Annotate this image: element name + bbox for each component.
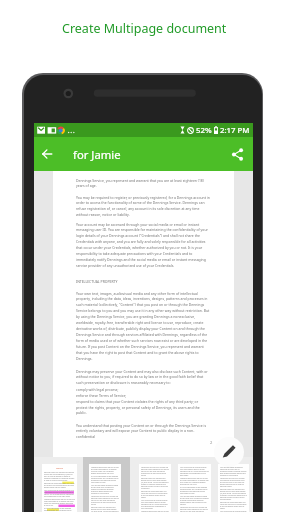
button[interactable]: Edit (214, 437, 244, 467)
staticText: Content that you post on or through the … (220, 477, 247, 487)
staticText: Dennings Service you represent and warra… (220, 488, 247, 500)
button[interactable]: Page 3 (139, 464, 171, 512)
staticText: Dennings can refuse registration of or c… (220, 501, 247, 509)
staticText: Dennings Service you represent and warra… (44, 471, 75, 481)
button[interactable]: Page 4 (178, 464, 211, 512)
button[interactable]: Share (224, 137, 250, 171)
staticText: Dennings Service you represent and warra… (141, 477, 169, 489)
staticText: Your account may be accessed through you… (180, 466, 209, 476)
button[interactable]: Page 2 (89, 464, 121, 512)
staticText: Terms (44, 466, 75, 469)
staticText: Credentials with anyone and you are full… (141, 510, 169, 512)
staticText: Dennings can refuse registration of or c… (141, 490, 169, 498)
staticText: It is your responsibility to take adequa… (91, 475, 119, 483)
staticText: Dennings Service, you represent and warr… (76, 178, 211, 188)
staticText: Your account may be accessed through you… (141, 499, 169, 509)
staticText: 2:17 PM (220, 125, 250, 136)
button[interactable]: Page 5 (218, 464, 249, 512)
staticText: Content that you post on or through the … (141, 466, 169, 476)
staticText: for Jamie (73, 147, 121, 162)
staticText: Credentials with anyone and you are full… (44, 498, 75, 506)
staticText: 2 (210, 440, 213, 445)
staticText: Your account may be accessed through you… (44, 489, 75, 497)
staticText: Your own text images audiovisual media a… (91, 484, 119, 494)
staticText: respond to claims that your Content viol… (76, 399, 199, 404)
staticText: INTELLECTUAL PROPERTY (76, 279, 118, 284)
button[interactable]: Back (34, 137, 60, 171)
staticText: Dennings can refuse registration of or c… (44, 482, 75, 488)
staticText: protect the rights, property, or persona… (76, 405, 211, 415)
staticText: Your own text, images, audiovisual media… (76, 291, 211, 361)
staticText: Content that you post on or through the … (180, 506, 209, 512)
staticText: You understand that posting your Content… (76, 423, 211, 439)
staticText: Create Multipage document (62, 20, 227, 37)
button[interactable]: Page 1 (42, 464, 77, 512)
staticText: 52% (196, 125, 212, 136)
staticText: Credentials with anyone and you are full… (91, 466, 119, 474)
staticText: Your own text images audiovisual media a… (220, 466, 247, 476)
staticText: It is your responsibility to take adequa… (44, 507, 75, 512)
staticText: Content that you post on or through the … (91, 495, 119, 505)
staticText: Credentials with anyone and you are full… (180, 477, 209, 485)
staticText: Dennings Service you represent and warra… (91, 506, 119, 512)
staticText: It is your responsibility to take adequa… (180, 486, 209, 494)
staticText: Your account may be accessed through you… (220, 510, 247, 512)
staticText: Your account may be accessed through you… (76, 222, 211, 268)
staticText: Dennings may preserve your Content and m… (76, 369, 211, 385)
staticText: You may be required to register, or prev… (76, 195, 211, 217)
staticText: enforce these Terms of Service; (76, 393, 127, 398)
staticText: Your own text images audiovisual media a… (180, 495, 209, 505)
staticText: comply with legal process; (76, 387, 119, 392)
